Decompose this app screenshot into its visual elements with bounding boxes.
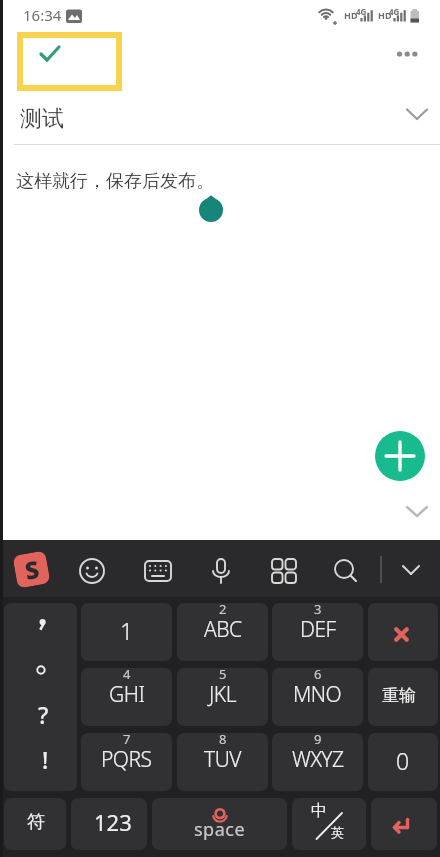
- button[interactable]: 0: [368, 733, 438, 791]
- button[interactable]: space: [152, 798, 287, 850]
- staticText: 3: [314, 603, 322, 618]
- staticText: HD: [378, 9, 392, 21]
- staticText: 测试: [20, 105, 64, 133]
- staticText: PQRS: [101, 745, 152, 774]
- button[interactable]: 8: [177, 733, 268, 791]
- button[interactable]: 重输: [368, 668, 438, 726]
- button[interactable]: [17, 32, 122, 91]
- staticText: 7: [123, 733, 131, 748]
- staticText: !: [42, 744, 49, 775]
- staticText: 4G: [389, 6, 400, 17]
- staticText: 2: [219, 603, 227, 618]
- button[interactable]: 中: [292, 798, 366, 850]
- staticText: space: [194, 817, 246, 842]
- staticText: 0: [396, 745, 410, 776]
- staticText: MNO: [293, 680, 342, 709]
- button[interactable]: [368, 603, 438, 661]
- staticText: WXYZ: [292, 745, 344, 774]
- button[interactable]: [405, 106, 429, 123]
- staticText: 6: [314, 668, 322, 683]
- staticText: 这样就行，保存后发布。: [16, 170, 214, 193]
- button[interactable]: 1: [81, 603, 172, 661]
- staticText: DEF: [300, 615, 336, 644]
- staticText: JKL: [209, 680, 236, 709]
- staticText: TUV: [204, 745, 241, 774]
- button[interactable]: ?: [4, 603, 77, 791]
- button[interactable]: 123: [71, 798, 147, 850]
- button[interactable]: 符: [4, 798, 66, 850]
- staticText: 123: [94, 807, 132, 837]
- button[interactable]: [375, 431, 425, 481]
- staticText: 16:34: [23, 5, 62, 25]
- staticText: 5: [219, 668, 227, 683]
- staticText: 9: [314, 733, 322, 748]
- button[interactable]: 7: [81, 733, 172, 791]
- button[interactable]: 9: [272, 733, 363, 791]
- button[interactable]: 2: [177, 603, 268, 661]
- staticText: HD: [344, 9, 358, 21]
- button[interactable]: 5: [177, 668, 268, 726]
- button[interactable]: [405, 503, 429, 519]
- staticText: 中: [311, 801, 327, 821]
- staticText: 符: [27, 811, 45, 834]
- button[interactable]: S: [12, 550, 51, 589]
- staticText: 8: [219, 733, 227, 748]
- button[interactable]: 4: [81, 668, 172, 726]
- button[interactable]: [371, 798, 437, 850]
- staticText: S: [22, 552, 42, 587]
- staticText: 英: [331, 824, 344, 840]
- staticText: 重输: [382, 685, 416, 706]
- button[interactable]: [396, 50, 420, 58]
- staticText: ?: [38, 699, 49, 730]
- button[interactable]: 6: [272, 668, 363, 726]
- staticText: GHI: [109, 680, 145, 709]
- staticText: 4: [123, 668, 131, 683]
- staticText: 4G: [356, 6, 367, 17]
- staticText: ABC: [204, 615, 242, 644]
- staticText: 1: [120, 615, 134, 646]
- button[interactable]: 3: [272, 603, 363, 661]
